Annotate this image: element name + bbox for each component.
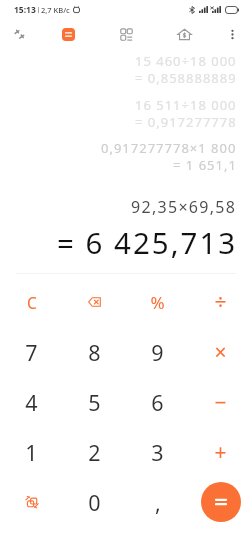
staticText: = 0,858888889 bbox=[135, 69, 237, 87]
staticText: = 6 425,713 bbox=[57, 222, 238, 262]
button[interactable]: − bbox=[189, 377, 252, 427]
button[interactable]: 5 bbox=[63, 377, 126, 427]
button[interactable]: 7 bbox=[0, 327, 63, 377]
button[interactable]: 1 bbox=[0, 427, 63, 477]
button[interactable]: Unit conversion bbox=[0, 477, 63, 527]
button[interactable]: 4 bbox=[0, 377, 63, 427]
button[interactable]: 6 bbox=[126, 377, 189, 427]
staticText: 9 bbox=[151, 338, 164, 367]
button[interactable]: + bbox=[189, 427, 252, 477]
staticText: % bbox=[150, 291, 165, 314]
staticText: − bbox=[214, 388, 227, 417]
staticText: 0 bbox=[88, 488, 101, 517]
staticText: 2 bbox=[88, 438, 101, 467]
staticText: 1 bbox=[25, 438, 38, 467]
staticText: 15:13 bbox=[14, 4, 36, 16]
staticText: 8 bbox=[88, 338, 101, 367]
button[interactable]: Basic calculator bbox=[49, 19, 87, 49]
staticText: 0,917277778×1 800 bbox=[101, 139, 237, 157]
staticText: 6 bbox=[151, 388, 164, 417]
button[interactable]: Clear entry bbox=[63, 277, 126, 327]
button[interactable]: ÷ bbox=[189, 277, 252, 327]
staticText: 15 460÷18 000 bbox=[135, 52, 237, 70]
staticText: 92,35×69,58 bbox=[131, 196, 237, 218]
staticText: + bbox=[214, 438, 227, 467]
button[interactable]: More options bbox=[213, 19, 251, 49]
staticText: 3 bbox=[151, 438, 164, 467]
button[interactable]: Equals bbox=[201, 482, 241, 522]
staticText: 7 bbox=[25, 338, 38, 367]
staticText: × bbox=[214, 338, 227, 367]
button[interactable]: 8 bbox=[63, 327, 126, 377]
staticText: 5 bbox=[88, 388, 101, 417]
button[interactable]: % bbox=[126, 277, 189, 327]
staticText: , bbox=[155, 488, 161, 517]
button[interactable]: , bbox=[126, 477, 189, 527]
button[interactable]: C bbox=[0, 277, 63, 327]
button[interactable]: 3 bbox=[126, 427, 189, 477]
button[interactable]: Unit converter bbox=[107, 19, 145, 49]
button[interactable]: × bbox=[189, 327, 252, 377]
staticText: = 0,917277778 bbox=[135, 113, 237, 131]
staticText: ÷ bbox=[214, 288, 227, 317]
button[interactable]: Scientific mode bbox=[0, 19, 38, 49]
staticText: 4 bbox=[25, 388, 38, 417]
button[interactable]: 0 bbox=[63, 477, 126, 527]
button[interactable]: Mortgage calculator bbox=[165, 19, 203, 49]
staticText: 16 511÷18 000 bbox=[135, 96, 237, 114]
button[interactable]: 2 bbox=[63, 427, 126, 477]
staticText: 2,7 KB/c bbox=[41, 5, 70, 15]
button[interactable]: 9 bbox=[126, 327, 189, 377]
staticText: C bbox=[27, 292, 37, 313]
staticText: = 1 651,1 bbox=[173, 156, 237, 174]
